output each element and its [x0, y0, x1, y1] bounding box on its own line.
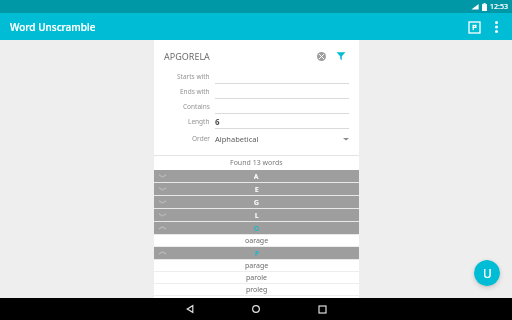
button[interactable]: oarage: [154, 235, 359, 247]
staticText: E: [255, 185, 259, 194]
staticText: Word Unscramble: [10, 20, 96, 34]
button[interactable]: Order: [164, 132, 349, 145]
button[interactable]: More options: [485, 16, 507, 38]
staticText: Order: [192, 134, 210, 143]
button[interactable]: G: [154, 196, 359, 208]
button[interactable]: proleg: [154, 284, 359, 296]
button[interactable]: O: [154, 222, 359, 234]
staticText: Length: [188, 117, 210, 126]
staticText: P: [255, 249, 259, 258]
button[interactable]: P: [154, 247, 359, 259]
staticText: G: [254, 198, 259, 207]
button[interactable]: E: [154, 183, 359, 195]
staticText: parage: [245, 261, 269, 271]
staticText: 12:53: [490, 2, 508, 12]
button[interactable]: parole: [154, 272, 359, 284]
staticText: U: [483, 265, 492, 281]
button[interactable]: Filter: [333, 48, 349, 64]
button[interactable]: A: [154, 170, 359, 182]
button[interactable]: Clear: [313, 48, 329, 64]
button[interactable]: Ends with: [164, 84, 349, 99]
staticText: O: [254, 224, 260, 233]
staticText: proleg: [246, 285, 268, 295]
button[interactable]: Recent apps: [302, 298, 342, 320]
button[interactable]: parage: [154, 260, 359, 272]
button[interactable]: L: [154, 209, 359, 221]
button[interactable]: Starts with: [164, 69, 349, 84]
staticText: parole: [246, 273, 267, 283]
button[interactable]: Length: [164, 114, 349, 129]
staticText: Alphabetical: [215, 134, 343, 144]
staticText: Contains: [183, 102, 210, 111]
staticText: APGORELA: [164, 50, 313, 62]
staticText: L: [255, 211, 259, 220]
staticText: Ends with: [180, 87, 210, 96]
button[interactable]: Dictionary: [463, 16, 485, 38]
staticText: oarage: [245, 236, 269, 246]
staticText: 6: [215, 116, 220, 127]
button[interactable]: Back: [170, 298, 210, 320]
button[interactable]: Contains: [164, 99, 349, 114]
button[interactable]: Unscramble: [474, 260, 500, 286]
staticText: A: [254, 172, 259, 181]
staticText: Found 13 words: [230, 158, 283, 168]
staticText: Starts with: [177, 72, 210, 81]
button[interactable]: Home: [236, 298, 276, 320]
